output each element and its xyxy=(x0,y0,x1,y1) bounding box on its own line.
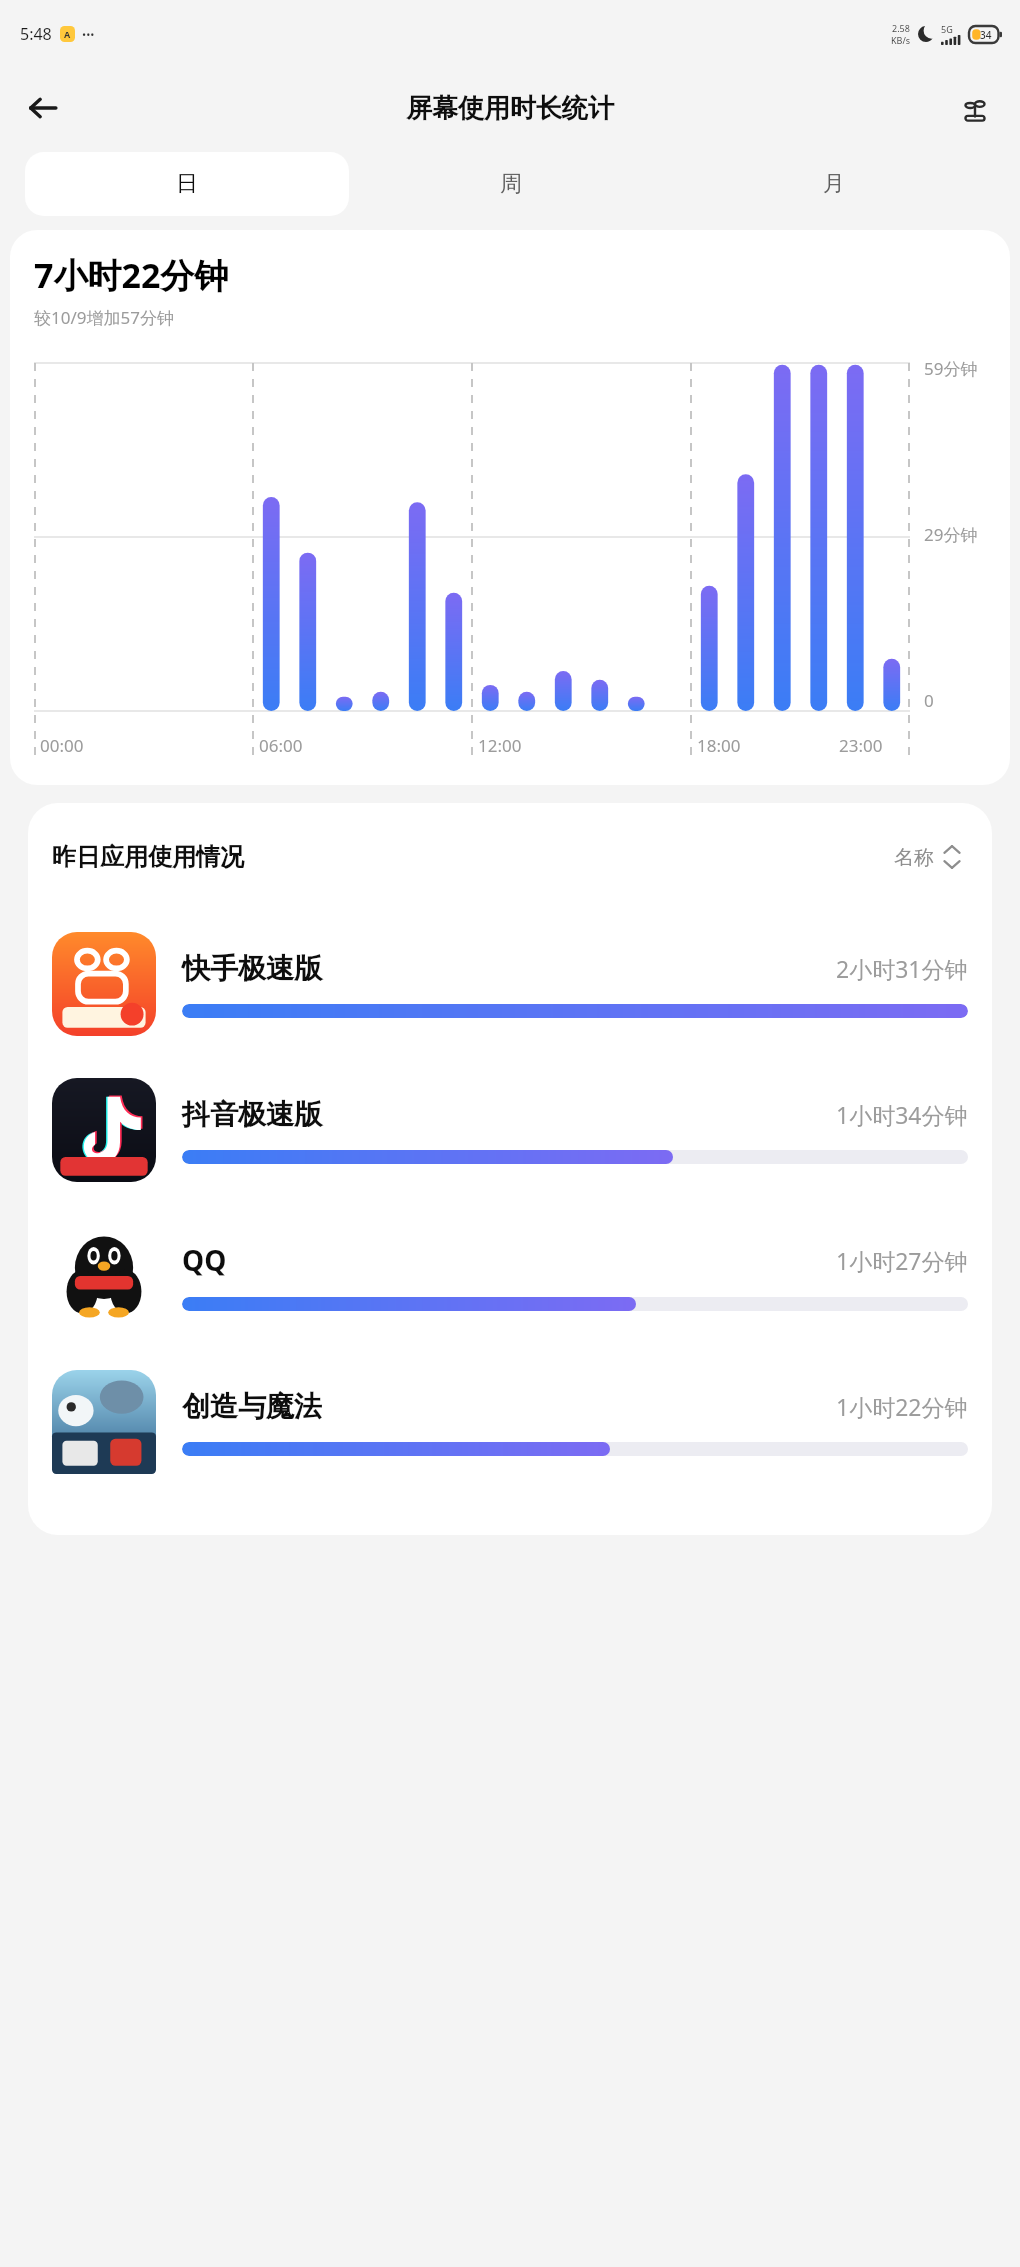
button[interactable]: 日 xyxy=(25,152,349,216)
button[interactable]: QQ xyxy=(28,1203,992,1349)
staticText: 06:00 xyxy=(259,734,303,757)
staticText: ••• xyxy=(82,27,95,42)
staticText: 1小时34分钟 xyxy=(836,1099,968,1130)
staticText: A xyxy=(64,28,71,40)
button[interactable]: 抖音极速版 xyxy=(28,1057,992,1203)
staticText: 18:00 xyxy=(697,734,741,757)
button[interactable]: Focus mode xyxy=(948,81,1002,135)
staticText: KB/s xyxy=(891,34,911,46)
staticText: 昨日应用使用情况 xyxy=(52,842,244,872)
staticText: 34 xyxy=(980,28,992,42)
staticText: 1小时27分钟 xyxy=(836,1245,968,1276)
staticText: 59分钟 xyxy=(924,357,978,380)
staticText: 29分钟 xyxy=(924,523,978,546)
staticText: 12:00 xyxy=(478,734,522,757)
staticText: 23:00 xyxy=(839,734,883,757)
button[interactable]: Back xyxy=(16,81,70,135)
staticText: 2.58 xyxy=(892,22,910,34)
staticText: 7小时22分钟 xyxy=(34,252,229,298)
staticText: QQ xyxy=(182,1241,227,1279)
staticText: 较10/9增加57分钟 xyxy=(34,306,174,329)
button[interactable]: 名称 xyxy=(888,838,968,876)
staticText: 00:00 xyxy=(40,734,84,757)
staticText: 月 xyxy=(823,170,845,198)
staticText: 创造与魔法 xyxy=(182,1389,322,1424)
staticText: 1小时22分钟 xyxy=(836,1391,968,1422)
staticText: 2小时31分钟 xyxy=(836,953,968,984)
button[interactable]: 月 xyxy=(672,152,995,216)
staticText: 名称 xyxy=(894,845,934,870)
staticText: 屏幕使用时长统计 xyxy=(406,92,614,125)
button[interactable]: 快手极速版 xyxy=(28,911,992,1057)
staticText: 周 xyxy=(500,170,522,198)
staticText: 5:48 xyxy=(20,23,52,45)
staticText: 快手极速版 xyxy=(182,951,322,986)
staticText: 5G xyxy=(941,23,953,35)
button[interactable]: 创造与魔法 xyxy=(28,1349,992,1495)
staticText: 日 xyxy=(176,170,198,198)
button[interactable]: 周 xyxy=(349,152,672,216)
staticText: 0 xyxy=(924,689,934,712)
staticText: 抖音极速版 xyxy=(182,1097,322,1132)
